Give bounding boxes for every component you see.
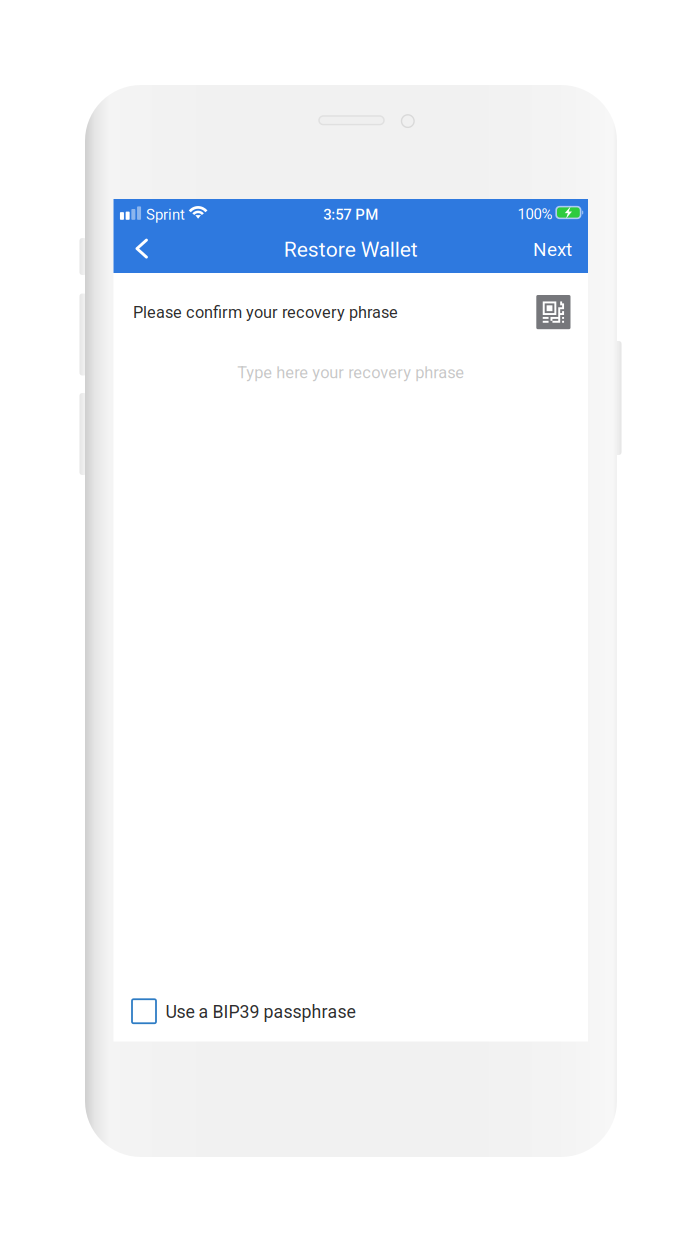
staticText: Type here your recovery phrase bbox=[237, 363, 464, 382]
staticText: 3:57 PM bbox=[323, 206, 378, 223]
staticText: Please confirm your recovery phrase bbox=[133, 303, 398, 322]
staticText: Use a BIP39 passphrase bbox=[165, 1001, 355, 1022]
button[interactable]: Scan QR code bbox=[536, 294, 570, 329]
staticText: Restore Wallet bbox=[284, 237, 418, 262]
button[interactable]: Next bbox=[519, 226, 586, 273]
button[interactable]: Use a BIP39 passphrase bbox=[113, 981, 588, 1041]
staticText: 100% bbox=[517, 205, 552, 223]
staticText: Sprint bbox=[146, 206, 185, 223]
staticText: Next bbox=[533, 238, 572, 261]
button[interactable]: Back bbox=[118, 226, 162, 273]
